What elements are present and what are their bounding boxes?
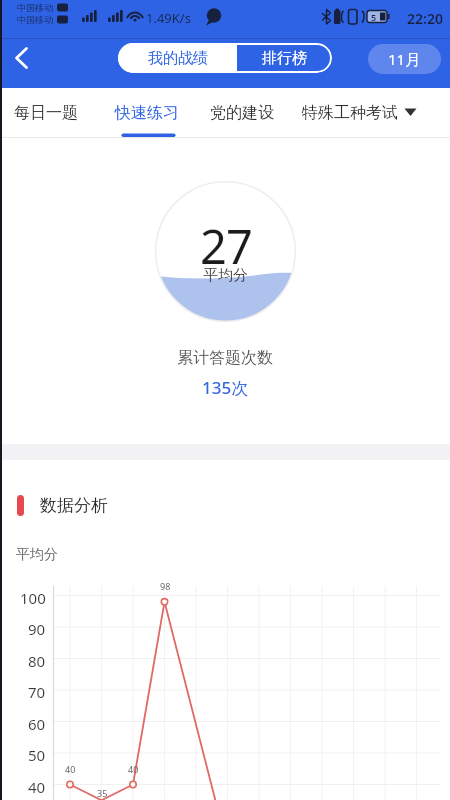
staticText: 40 <box>65 763 76 775</box>
staticText: 我的战绩 <box>148 49 208 68</box>
staticText: 11月 <box>388 49 421 69</box>
staticText: 40 <box>28 777 46 793</box>
staticText: 平均分 <box>203 266 248 284</box>
button[interactable]: 排行榜 <box>237 43 332 73</box>
staticText: 27 <box>200 214 252 264</box>
staticText: 特殊工种考试 <box>302 103 398 123</box>
staticText: 70 <box>28 682 46 698</box>
staticText: 35 <box>97 787 108 799</box>
staticText: 80 <box>28 651 46 667</box>
staticText: 数据分析 <box>40 495 108 516</box>
button[interactable] <box>8 42 42 74</box>
staticText: 中国移动 <box>17 2 53 13</box>
staticText: 累计答题次数 <box>177 348 273 368</box>
staticText: 90 <box>28 619 46 635</box>
staticText: 50 <box>28 745 46 761</box>
staticText: 40 <box>128 763 139 775</box>
staticText: 100 <box>20 588 46 604</box>
button[interactable]: 每日一题 <box>14 102 80 123</box>
staticText: 党的建设 <box>210 103 274 123</box>
staticText: 135次 <box>202 376 249 397</box>
staticText: 中国移动 <box>17 14 53 25</box>
button[interactable]: 党的建设 <box>210 102 276 123</box>
button[interactable]: 11月 <box>368 44 441 74</box>
staticText: 排行榜 <box>262 49 307 68</box>
button[interactable]: 快速练习 <box>115 102 181 123</box>
staticText: 每日一题 <box>14 103 78 123</box>
button[interactable]: 我的战绩 <box>118 43 237 73</box>
staticText: 1.49K/s <box>146 9 191 25</box>
button[interactable]: 特殊工种考试 <box>302 102 400 123</box>
staticText: 平均分 <box>16 546 58 562</box>
staticText: 22:20 <box>407 9 443 25</box>
staticText: 快速练习 <box>115 103 179 123</box>
staticText: 5 <box>371 11 377 22</box>
button[interactable]: 135次 <box>125 376 325 397</box>
staticText: 60 <box>28 714 46 730</box>
staticText: 98 <box>160 580 171 592</box>
